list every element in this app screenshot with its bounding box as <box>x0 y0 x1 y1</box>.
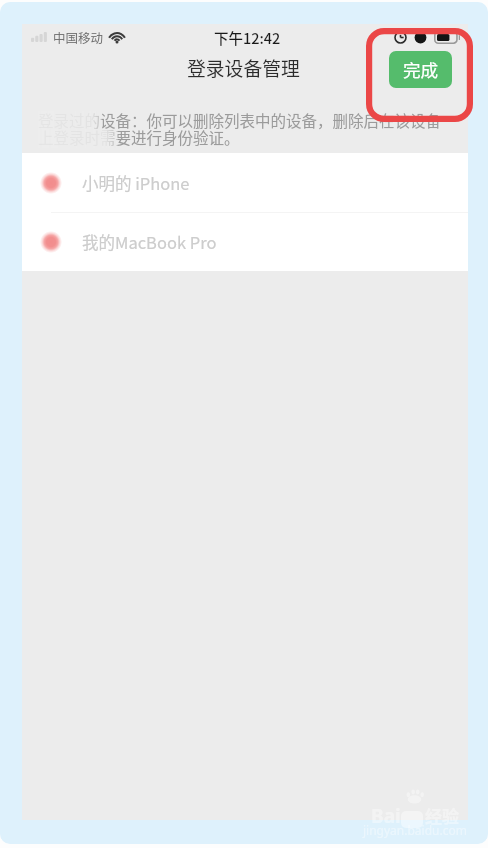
staticText: Bai <box>371 803 401 829</box>
button[interactable]: Delete <box>22 153 468 212</box>
button[interactable]: 完成 <box>389 51 452 88</box>
staticText: 登录设备管理 <box>187 54 300 81</box>
staticText: 中国移动 <box>53 28 104 46</box>
button[interactable]: Delete <box>40 231 62 253</box>
staticText: du <box>403 811 421 828</box>
staticText: 下午12:42 <box>214 27 281 48</box>
staticText: 登录过的设备：你可以删除列表中的设备，删除后在该设备上登录时需要进行身份验证。 <box>38 109 444 149</box>
staticText: 完成 <box>403 57 439 82</box>
staticText: 经验 <box>425 803 459 828</box>
staticText: 我的MacBook Pro <box>82 230 217 254</box>
staticText: jingyan.baidu.com <box>363 822 467 838</box>
button[interactable]: Delete <box>40 172 62 194</box>
button[interactable]: Delete <box>22 213 468 271</box>
staticText: 小明的 iPhone <box>82 171 190 195</box>
